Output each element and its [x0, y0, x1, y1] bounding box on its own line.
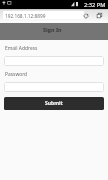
button[interactable]: 192.168.1.12:8899 — [3, 11, 84, 19]
staticText: Email Address — [5, 45, 38, 52]
staticText: Submit — [45, 100, 63, 107]
staticText: 2:32 PM — [84, 1, 106, 9]
button[interactable]: Reload — [82, 9, 90, 22]
staticText: 192.168.1.12:8899 — [5, 13, 46, 19]
button[interactable] — [4, 56, 104, 66]
staticText: Password — [5, 71, 28, 78]
button[interactable]: Submit — [4, 97, 104, 110]
button[interactable]: Tabs — [95, 9, 103, 22]
staticText: Sign In — [43, 26, 62, 33]
button[interactable] — [4, 82, 104, 92]
